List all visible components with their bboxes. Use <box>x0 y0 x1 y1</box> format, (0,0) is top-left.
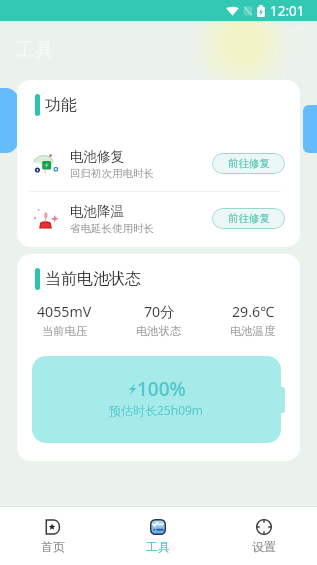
button[interactable]: 前往修复 <box>212 208 285 229</box>
staticText: 前往修复 <box>228 157 270 170</box>
button[interactable]: 电池修复 <box>17 140 300 187</box>
staticText: 首页 <box>41 539 65 554</box>
staticText: 工具 <box>146 539 170 554</box>
button[interactable]: 工具 <box>105 507 211 565</box>
staticText: 电池修复 <box>70 148 124 165</box>
button[interactable]: 设置 <box>211 507 317 565</box>
staticText: 工具 <box>16 38 54 62</box>
staticText: 前往修复 <box>228 212 270 225</box>
button[interactable]: 首页 <box>0 507 105 565</box>
staticText: 29.6℃ <box>232 302 275 321</box>
staticText: 功能 <box>45 95 77 115</box>
staticText: 电池温度 <box>230 324 276 338</box>
staticText: 70分 <box>144 302 175 321</box>
staticText: 当前电池状态 <box>45 269 141 289</box>
staticText: 设置 <box>252 539 276 554</box>
staticText: 预估时长25h09m <box>109 402 204 418</box>
staticText: 4055mV <box>37 302 92 321</box>
staticText: 12:01 <box>270 2 305 20</box>
staticText: 100% <box>137 376 186 402</box>
staticText: 电池降温 <box>70 203 124 220</box>
staticText: 回归初次用电时长 <box>70 167 154 180</box>
staticText: 省电延长使用时长 <box>70 222 154 235</box>
button[interactable]: 电池降温 <box>17 195 300 242</box>
staticText: 当前电压 <box>42 324 88 338</box>
button[interactable]: 前往修复 <box>212 153 285 174</box>
staticText: 电池状态 <box>136 324 182 338</box>
